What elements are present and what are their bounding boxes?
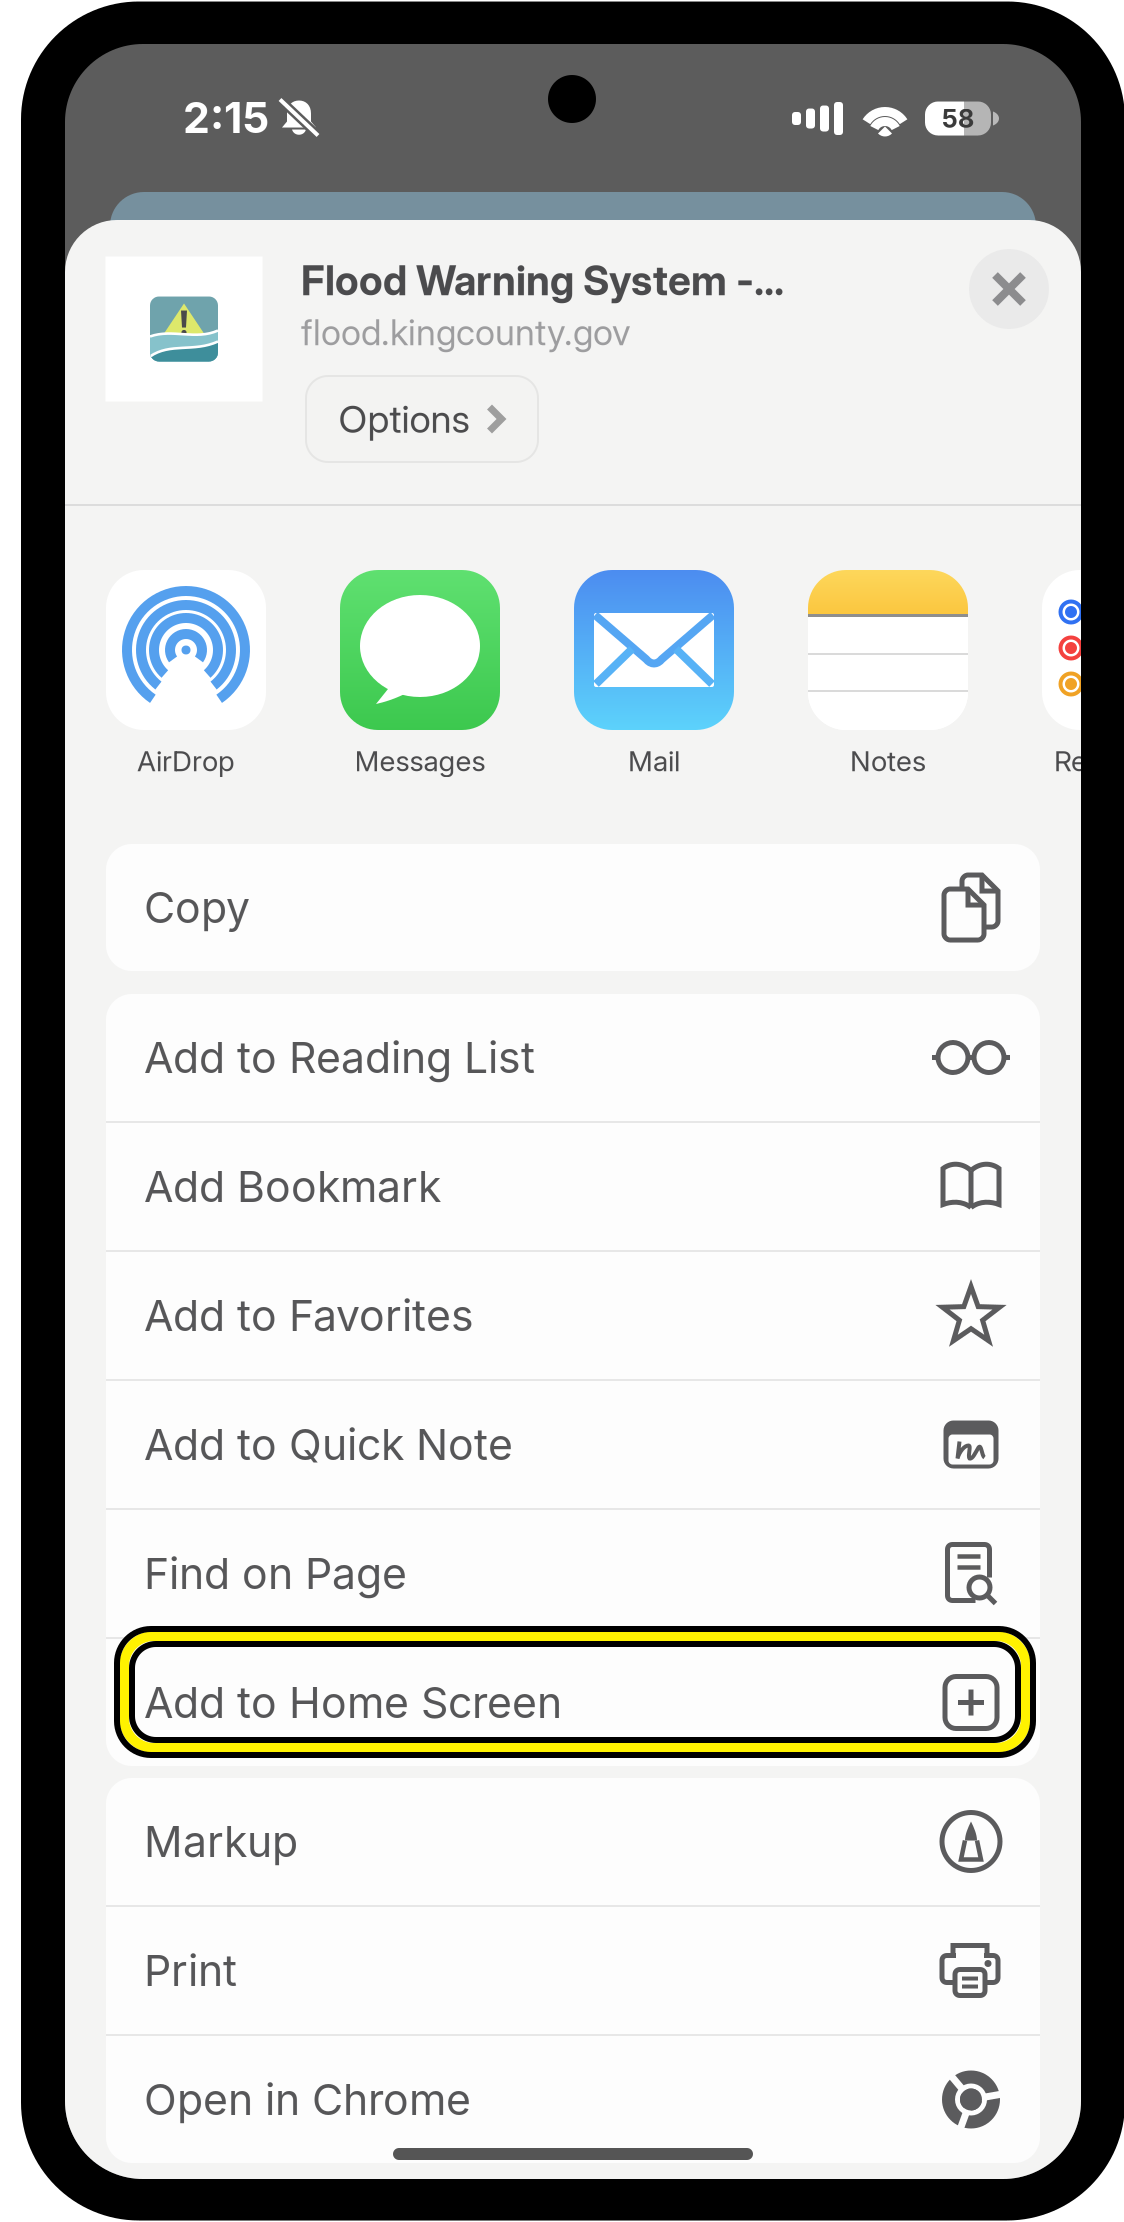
staticText: 2:15 bbox=[183, 92, 269, 143]
button[interactable]: Notes bbox=[763, 570, 1013, 792]
staticText: Markup bbox=[144, 1816, 298, 1867]
staticText: Reminders bbox=[1054, 744, 1124, 778]
button[interactable]: Add to Quick Note bbox=[106, 1381, 1040, 1508]
button[interactable]: Add to Reading List bbox=[106, 994, 1040, 1121]
staticText: Notes bbox=[850, 744, 926, 778]
staticText: AirDrop bbox=[137, 744, 235, 778]
staticText: Mail bbox=[628, 744, 680, 778]
staticText: Add to Home Screen bbox=[144, 1677, 562, 1728]
button[interactable]: Messages bbox=[295, 570, 545, 792]
button[interactable]: Add to Favorites bbox=[106, 1252, 1040, 1379]
button[interactable]: Print bbox=[106, 1907, 1040, 2034]
staticText: Add to Quick Note bbox=[144, 1419, 513, 1470]
button[interactable]: Find on Page bbox=[106, 1510, 1040, 1637]
button[interactable]: Reminders bbox=[997, 570, 1124, 792]
staticText: Add to Favorites bbox=[144, 1290, 474, 1341]
button[interactable]: Add Bookmark bbox=[106, 1123, 1040, 1250]
staticText: Flood Warning System -... bbox=[301, 256, 784, 305]
staticText: Open in Chrome bbox=[144, 2074, 471, 2125]
staticText: Copy bbox=[144, 882, 250, 933]
staticText: 58 bbox=[942, 103, 974, 134]
button[interactable]: AirDrop bbox=[61, 570, 311, 792]
staticText: Add Bookmark bbox=[144, 1161, 441, 1212]
staticText: Print bbox=[144, 1945, 237, 1996]
staticText: Find on Page bbox=[144, 1548, 407, 1599]
staticText: Messages bbox=[354, 744, 485, 778]
button[interactable]: Copy bbox=[106, 844, 1040, 971]
staticText: Options bbox=[338, 396, 469, 442]
staticText: Add to Reading List bbox=[144, 1032, 535, 1083]
button[interactable]: Options bbox=[306, 376, 538, 462]
staticText: flood.kingcounty.gov bbox=[301, 311, 631, 354]
button[interactable]: Add to Home Screen bbox=[106, 1639, 1040, 1766]
button[interactable]: Open in Chrome bbox=[106, 2036, 1040, 2163]
button[interactable]: Mail bbox=[529, 570, 779, 792]
button[interactable]: Close bbox=[963, 243, 1055, 335]
button[interactable]: Markup bbox=[106, 1778, 1040, 1905]
